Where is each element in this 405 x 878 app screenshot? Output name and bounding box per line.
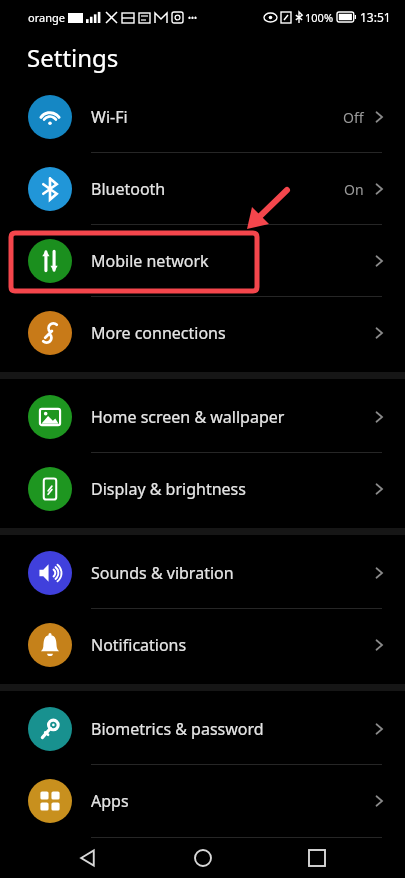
button[interactable]: Display & brightness <box>0 453 405 525</box>
staticText: Biometrics & password <box>91 718 264 740</box>
button[interactable]: Home <box>176 838 230 878</box>
staticText: ••• <box>188 12 198 23</box>
button[interactable]: Sounds & vibration <box>0 537 405 609</box>
staticText: Bluetooth <box>91 178 166 200</box>
button[interactable]: Bluetooth <box>0 153 405 225</box>
staticText: Home screen & wallpaper <box>91 406 285 428</box>
staticText: Sounds & vibration <box>91 562 234 584</box>
button[interactable]: Wi-Fi <box>0 81 405 153</box>
button[interactable]: Back <box>61 838 115 878</box>
staticText: Notifications <box>91 634 187 656</box>
button[interactable]: Notifications <box>0 609 405 681</box>
staticText: 13:51 <box>360 9 391 25</box>
button[interactable]: Mobile network <box>0 225 405 297</box>
button[interactable]: Recent apps <box>290 838 344 878</box>
staticText: Settings <box>27 41 119 74</box>
staticText: On <box>344 180 364 199</box>
staticText: Wi-Fi <box>91 106 128 128</box>
staticText: More connections <box>91 322 226 344</box>
button[interactable]: Apps <box>0 765 405 837</box>
button[interactable]: More connections <box>0 297 405 369</box>
staticText: 100% <box>305 10 334 25</box>
staticText: Display & brightness <box>91 478 246 500</box>
staticText: Off <box>343 108 364 127</box>
button[interactable]: Biometrics & password <box>0 693 405 765</box>
staticText: Mobile network <box>91 250 209 272</box>
button[interactable]: Home screen & wallpaper <box>0 381 405 453</box>
staticText: orange <box>28 10 65 25</box>
staticText: Apps <box>91 790 129 812</box>
